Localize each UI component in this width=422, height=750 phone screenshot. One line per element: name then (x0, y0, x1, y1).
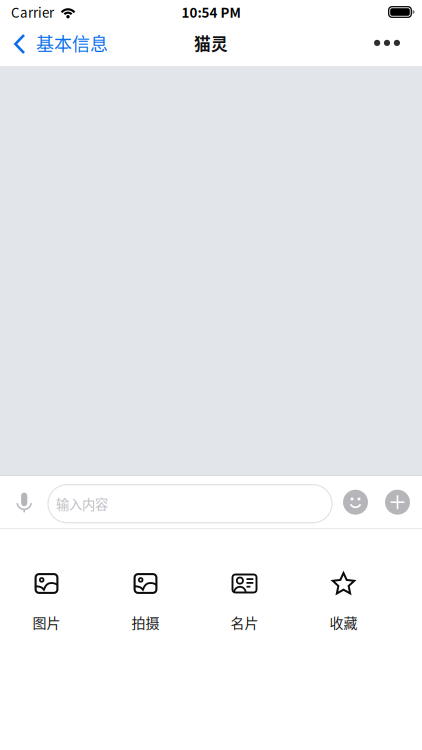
button[interactable]: Voice input (0, 476, 48, 528)
staticText: 拍摄 (131, 612, 159, 632)
button[interactable]: 名片 (195, 573, 294, 632)
staticText: Carrier (11, 2, 54, 22)
button[interactable]: 基本信息 (0, 24, 118, 66)
button[interactable]: More (374, 24, 422, 66)
staticText: 猫灵 (194, 31, 228, 55)
staticText: 名片 (230, 612, 258, 632)
staticText: 输入内容 (56, 494, 108, 513)
button[interactable]: Emoji (332, 476, 379, 528)
staticText: 10:54 PM (181, 2, 240, 22)
staticText: 图片 (32, 612, 60, 632)
button[interactable]: 输入内容 (48, 482, 332, 523)
staticText: 收藏 (329, 612, 357, 632)
button[interactable]: More options (379, 476, 422, 528)
button[interactable]: 收藏 (294, 573, 393, 632)
staticText: 基本信息 (36, 30, 108, 56)
button[interactable]: 拍摄 (96, 573, 195, 632)
button[interactable]: 图片 (0, 573, 96, 632)
